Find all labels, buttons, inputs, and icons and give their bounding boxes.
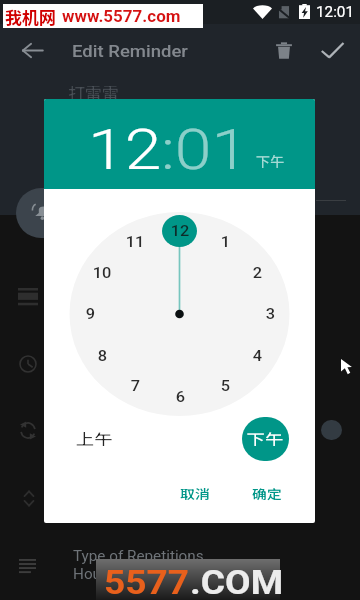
staticText: Edit Reminder bbox=[72, 41, 189, 61]
button[interactable]: 12 bbox=[88, 117, 151, 183]
staticText: Hour bbox=[73, 566, 107, 582]
staticText: 1 bbox=[221, 233, 230, 251]
staticText: www.5577.com bbox=[62, 6, 181, 26]
staticText: 取消 bbox=[180, 484, 211, 503]
button[interactable]: :01 bbox=[161, 117, 235, 183]
staticText: 下午 bbox=[247, 428, 284, 450]
staticText: 3 bbox=[266, 305, 275, 323]
staticText: 7 bbox=[131, 377, 140, 395]
button[interactable]: Delete bbox=[260, 26, 308, 74]
staticText: 5 bbox=[221, 377, 230, 395]
staticText: 确定 bbox=[252, 484, 283, 503]
button[interactable]: 取消 bbox=[170, 474, 217, 513]
button[interactable]: 下午 bbox=[251, 147, 289, 175]
staticText: 9 bbox=[86, 305, 95, 323]
staticText: 2 bbox=[253, 264, 262, 282]
button[interactable]: Save bbox=[308, 26, 356, 74]
staticText: 10 bbox=[92, 264, 112, 282]
staticText: 11 bbox=[125, 233, 145, 251]
staticText: 6 bbox=[176, 388, 185, 406]
staticText: 我机网 bbox=[5, 4, 56, 28]
staticText: Type of Repetitions bbox=[73, 548, 204, 564]
staticText: 12 bbox=[170, 222, 190, 240]
staticText: 8 bbox=[98, 347, 107, 365]
staticText: 打雷雷 bbox=[68, 80, 119, 105]
button[interactable]: Back bbox=[8, 26, 56, 74]
staticText: 4 bbox=[253, 347, 262, 365]
button[interactable]: 确定 bbox=[242, 474, 289, 513]
staticText: .COM bbox=[190, 562, 284, 600]
staticText: 上午 bbox=[76, 428, 114, 450]
button[interactable]: 下午 bbox=[242, 417, 289, 461]
staticText: 5577 bbox=[104, 562, 190, 600]
staticText: 12:01 bbox=[316, 4, 354, 20]
button[interactable]: 上午 bbox=[68, 420, 115, 458]
staticText: 下午 bbox=[256, 151, 284, 171]
